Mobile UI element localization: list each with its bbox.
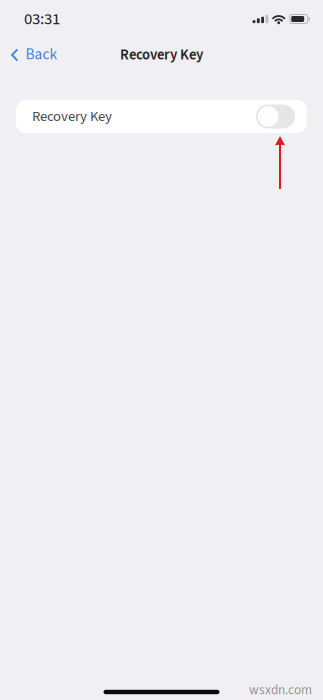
- staticText: Recovery Key: [120, 45, 203, 65]
- button[interactable]: Recovery Key: [16, 100, 307, 133]
- staticText: Back: [25, 44, 57, 65]
- staticText: Recovery Key: [32, 106, 112, 127]
- staticText: wsxdn.com: [249, 680, 312, 699]
- staticText: 03:31: [24, 7, 60, 31]
- button[interactable]: Back: [0, 39, 65, 71]
